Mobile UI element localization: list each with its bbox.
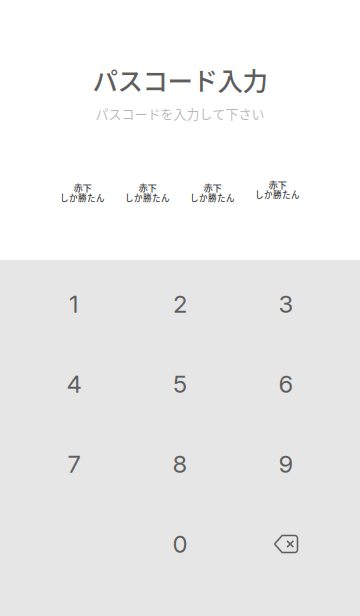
staticText: 0	[172, 529, 187, 558]
button[interactable]: 2	[127, 264, 233, 344]
staticText: 赤下	[73, 181, 91, 194]
staticText: 2	[173, 289, 187, 318]
button[interactable]: 8	[127, 424, 233, 504]
button[interactable]: 1	[21, 264, 127, 344]
staticText: 赤下	[138, 181, 156, 194]
staticText: 5	[173, 369, 187, 398]
button[interactable]: 5	[127, 344, 233, 424]
staticText: しか勝たん	[125, 191, 170, 204]
staticText: しか勝たん	[255, 188, 300, 200]
staticText: 8	[172, 449, 187, 478]
button[interactable]: 3	[233, 264, 339, 344]
staticText: パスコードを入力して下さい	[95, 104, 264, 123]
staticText: 7	[67, 449, 80, 478]
button[interactable]: 6	[233, 344, 339, 424]
button[interactable]: 0	[127, 504, 233, 584]
staticText: 1	[69, 289, 79, 318]
staticText: パスコード入力	[92, 61, 267, 98]
staticText: 9	[278, 449, 293, 478]
button[interactable]: 4	[21, 344, 127, 424]
button[interactable]: 7	[21, 424, 127, 504]
staticText: しか勝たん	[190, 191, 235, 204]
staticText: 赤下	[268, 178, 286, 191]
staticText: 6	[278, 369, 293, 398]
staticText: 3	[278, 289, 293, 318]
button[interactable]: 9	[233, 424, 339, 504]
button[interactable]: Delete	[233, 504, 339, 584]
staticText: 4	[66, 369, 81, 398]
staticText: 赤下	[203, 181, 221, 194]
staticText: しか勝たん	[60, 191, 105, 204]
